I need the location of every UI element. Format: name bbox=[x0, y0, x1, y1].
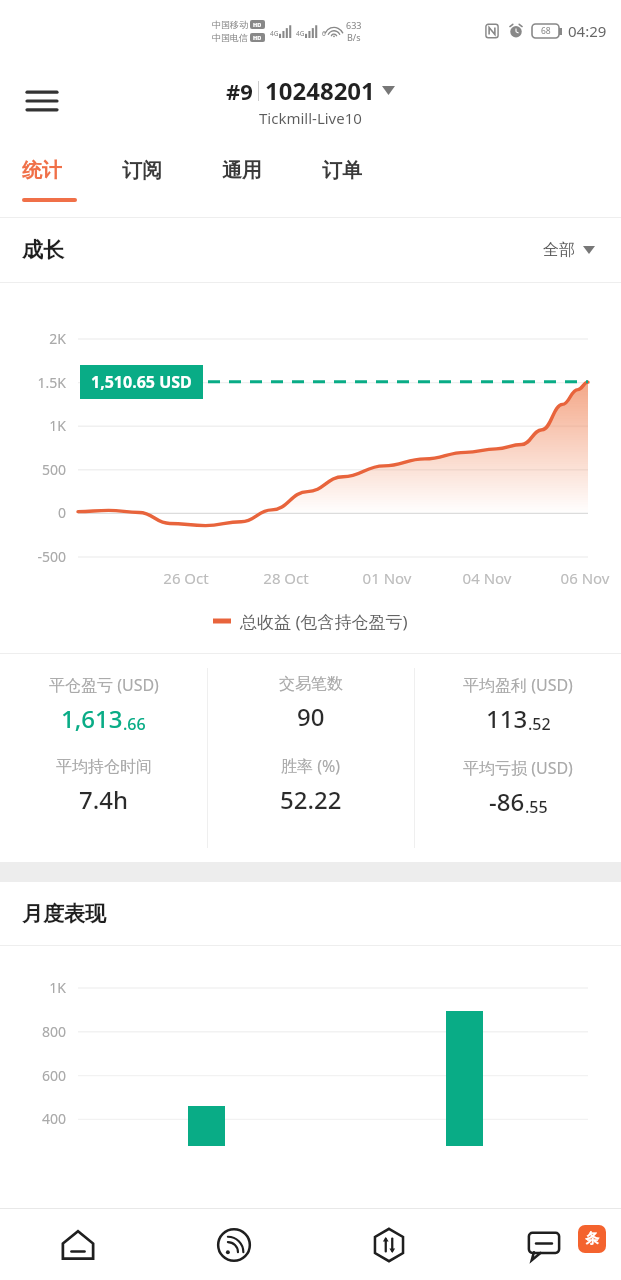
staticText: 通用 bbox=[222, 158, 262, 183]
button[interactable]: 订阅 bbox=[122, 140, 222, 217]
staticText: 成长 bbox=[22, 237, 64, 263]
staticText: 400 bbox=[0, 1109, 66, 1128]
button[interactable]: Signals bbox=[156, 1209, 311, 1280]
button[interactable]: 通用 bbox=[222, 140, 322, 217]
staticText: 68 bbox=[541, 25, 551, 37]
button[interactable]: Menu bbox=[18, 77, 66, 125]
staticText: 1K bbox=[0, 416, 66, 435]
button[interactable]: 订单 bbox=[322, 140, 422, 217]
staticText: 1,510.65 USD bbox=[91, 371, 192, 393]
staticText: 6 bbox=[322, 29, 326, 38]
staticText: 中国电信 bbox=[212, 32, 248, 43]
staticText: 2K bbox=[0, 329, 66, 348]
staticText: 全部 bbox=[543, 240, 575, 260]
staticText: .66 bbox=[123, 713, 146, 735]
staticText: 52.22 bbox=[280, 783, 342, 816]
staticText: 90 bbox=[297, 700, 325, 733]
other: NFC bbox=[484, 23, 500, 39]
staticText: 1,613 bbox=[61, 702, 123, 735]
staticText: 10248201 bbox=[265, 74, 375, 107]
staticText: 28 Oct bbox=[236, 568, 336, 588]
button[interactable]: Home bbox=[0, 1209, 156, 1280]
staticText: 4G bbox=[296, 29, 305, 38]
staticText: HD bbox=[253, 34, 262, 41]
staticText: Tickmill-Live10 bbox=[259, 108, 362, 128]
staticText: HD bbox=[253, 21, 262, 28]
staticText: 04 Nov bbox=[437, 568, 537, 588]
staticText: 633 bbox=[346, 19, 362, 31]
staticText: -500 bbox=[0, 547, 66, 566]
staticText: 月度表现 bbox=[22, 901, 106, 927]
staticText: .55 bbox=[525, 796, 548, 818]
staticText: 中国移动 bbox=[212, 19, 248, 30]
staticText: 0 bbox=[0, 503, 66, 522]
staticText: #9 bbox=[226, 76, 253, 106]
staticText: 胜率 (%) bbox=[281, 755, 341, 777]
staticText: 06 Nov bbox=[535, 568, 621, 588]
staticText: .52 bbox=[528, 713, 551, 735]
staticText: 01 Nov bbox=[337, 568, 437, 588]
staticText: 600 bbox=[0, 1066, 66, 1085]
staticText: 7.4h bbox=[79, 783, 129, 816]
staticText: B/s bbox=[347, 31, 361, 43]
staticText: 订单 bbox=[322, 158, 362, 183]
staticText: 500 bbox=[0, 460, 66, 479]
staticText: 113 bbox=[486, 702, 528, 735]
staticText: 统计 bbox=[22, 158, 62, 183]
staticText: 26 Oct bbox=[136, 568, 236, 588]
staticText: 总收益 (包含持仓盈亏) bbox=[240, 610, 408, 633]
button[interactable]: Trade bbox=[311, 1209, 466, 1280]
button[interactable]: Messages bbox=[466, 1209, 621, 1280]
staticText: -86 bbox=[489, 785, 525, 818]
staticText: 1.5K bbox=[0, 373, 66, 392]
staticText: 平均持仓时间 bbox=[56, 757, 152, 777]
staticText: 交易笔数 bbox=[279, 674, 343, 694]
staticText: 订阅 bbox=[122, 158, 162, 183]
button[interactable]: 交易笔数 bbox=[208, 654, 414, 816]
staticText: 平均亏损 (USD) bbox=[463, 757, 573, 779]
button[interactable]: 平仓盈亏 (USD) bbox=[0, 654, 207, 816]
other: Alarm bbox=[508, 23, 524, 39]
staticText: 800 bbox=[0, 1022, 66, 1041]
staticText: 1K bbox=[0, 978, 66, 997]
button[interactable]: #9 bbox=[226, 74, 395, 128]
button[interactable]: 统计 bbox=[22, 140, 122, 217]
staticText: 条 bbox=[585, 1230, 599, 1248]
staticText: 4G bbox=[270, 29, 279, 38]
button[interactable]: 平均盈利 (USD) bbox=[415, 654, 621, 818]
staticText: 平均盈利 (USD) bbox=[463, 674, 573, 696]
button[interactable]: 全部 bbox=[537, 234, 601, 266]
staticText: 04:29 bbox=[568, 21, 607, 41]
staticText: 平仓盈亏 (USD) bbox=[49, 674, 159, 696]
